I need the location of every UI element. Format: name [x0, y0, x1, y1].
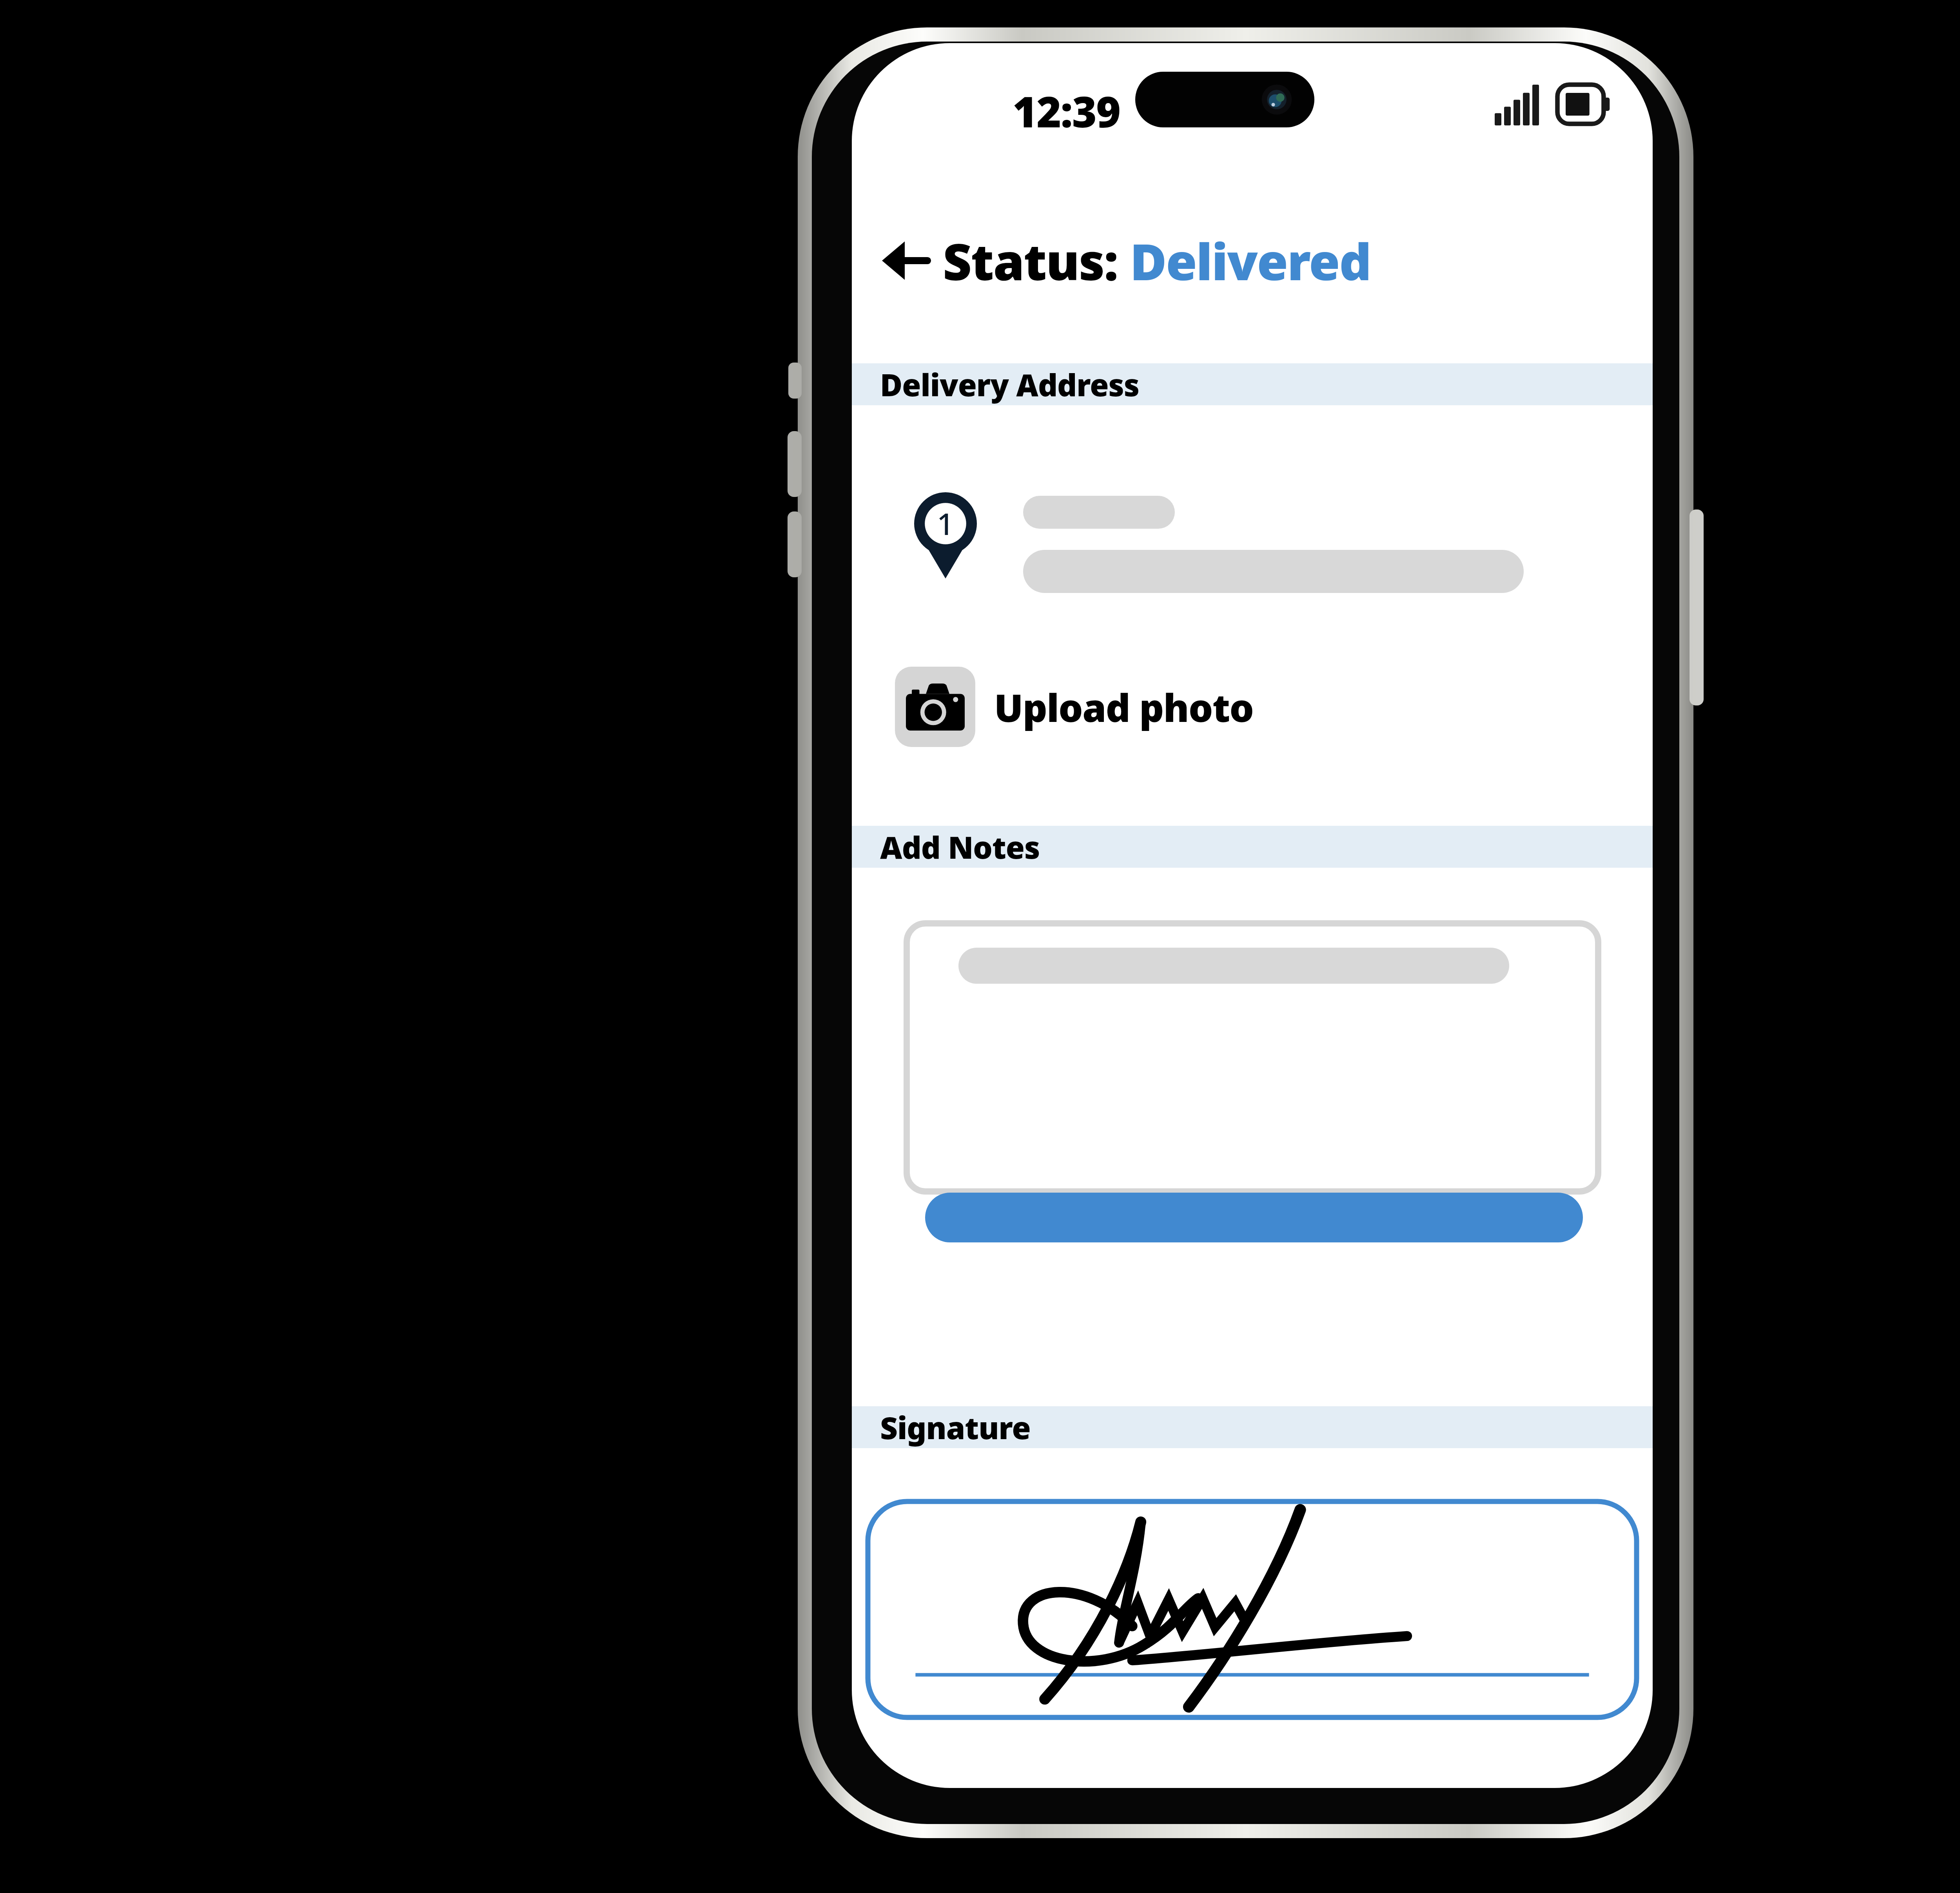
staticText: Status: Delivered: [943, 227, 1371, 295]
staticText: Add Notes: [880, 826, 1040, 868]
button[interactable]: Submit: [925, 1193, 1583, 1242]
button[interactable]: Signature pad: [865, 1499, 1639, 1720]
button[interactable]: Back: [875, 231, 934, 290]
staticText: Upload photo: [994, 681, 1254, 733]
staticText: 12:39: [1013, 82, 1120, 140]
button[interactable]: Upload photo: [895, 662, 1254, 752]
button[interactable]: [904, 920, 1601, 1195]
other: Location 1: [914, 492, 977, 578]
staticText: Delivery Address: [880, 364, 1140, 405]
staticText: Signature: [880, 1407, 1031, 1448]
staticText: 1: [937, 503, 954, 544]
